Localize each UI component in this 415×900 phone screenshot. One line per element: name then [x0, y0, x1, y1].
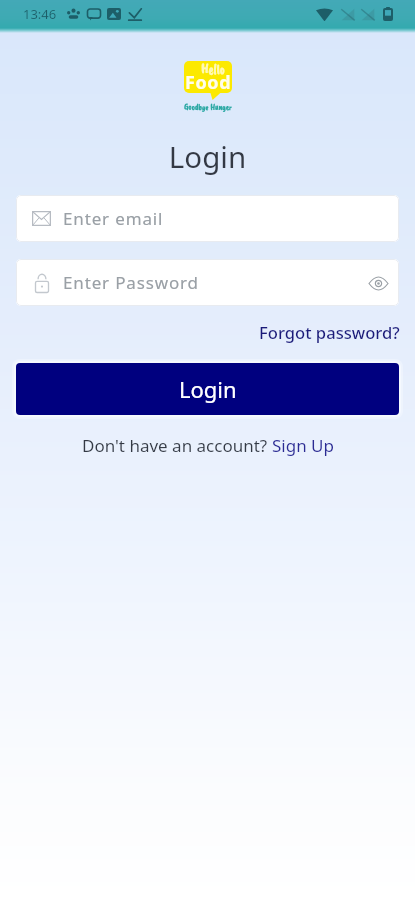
button[interactable]: Forgot password?	[244, 317, 415, 348]
button[interactable]: Enter email	[16, 195, 399, 242]
button[interactable]: Sign Up	[272, 434, 334, 457]
button[interactable]: Login	[16, 363, 399, 415]
staticText: Goodbye Hunger	[184, 102, 232, 112]
staticText: Hello	[201, 62, 225, 78]
staticText: Enter email	[63, 207, 164, 230]
button[interactable]: Show password	[363, 268, 393, 298]
staticText: Enter Password	[63, 271, 199, 294]
staticText: Forgot password?	[259, 321, 400, 344]
staticText: Sign Up	[272, 434, 334, 457]
staticText: 13:46	[23, 5, 57, 23]
staticText: Login	[0, 136, 415, 176]
staticText: Food	[185, 70, 232, 95]
staticText: Login	[179, 374, 237, 404]
button[interactable]: Enter Password	[16, 259, 399, 306]
staticText: Don't have an account?	[82, 434, 272, 457]
